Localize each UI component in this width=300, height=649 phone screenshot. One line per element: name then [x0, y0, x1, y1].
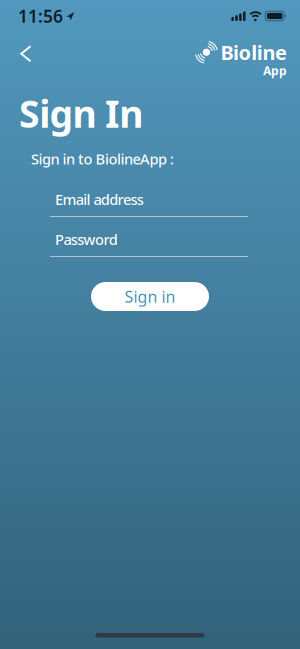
staticText: Sign In: [19, 88, 143, 138]
staticText: 11:56: [18, 4, 63, 27]
staticText: Password: [55, 229, 118, 249]
staticText: Bioline: [220, 39, 287, 66]
button[interactable]: Sign in: [91, 282, 209, 311]
staticText: Email address: [55, 189, 144, 209]
staticText: App: [263, 63, 287, 78]
staticText: Sign in to BiolineApp :: [31, 149, 174, 169]
staticText: Sign in: [124, 286, 175, 307]
textField[interactable]: Email address: [50, 189, 248, 217]
textField[interactable]: Password: [50, 229, 248, 257]
button[interactable]: Back: [0, 37, 32, 70]
